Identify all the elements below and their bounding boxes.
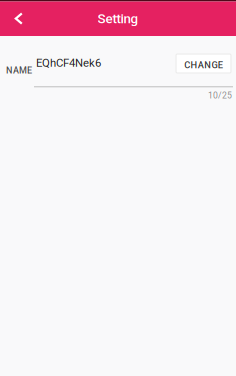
button[interactable]: Back <box>0 2 36 36</box>
staticText: NAME <box>6 65 32 76</box>
staticText: 10/25 <box>208 90 232 101</box>
staticText: EQhCF4Nek6 <box>36 56 101 70</box>
staticText: Setting <box>97 11 138 26</box>
button[interactable]: CHANGE <box>175 53 231 73</box>
staticText: CHANGE <box>184 59 223 70</box>
